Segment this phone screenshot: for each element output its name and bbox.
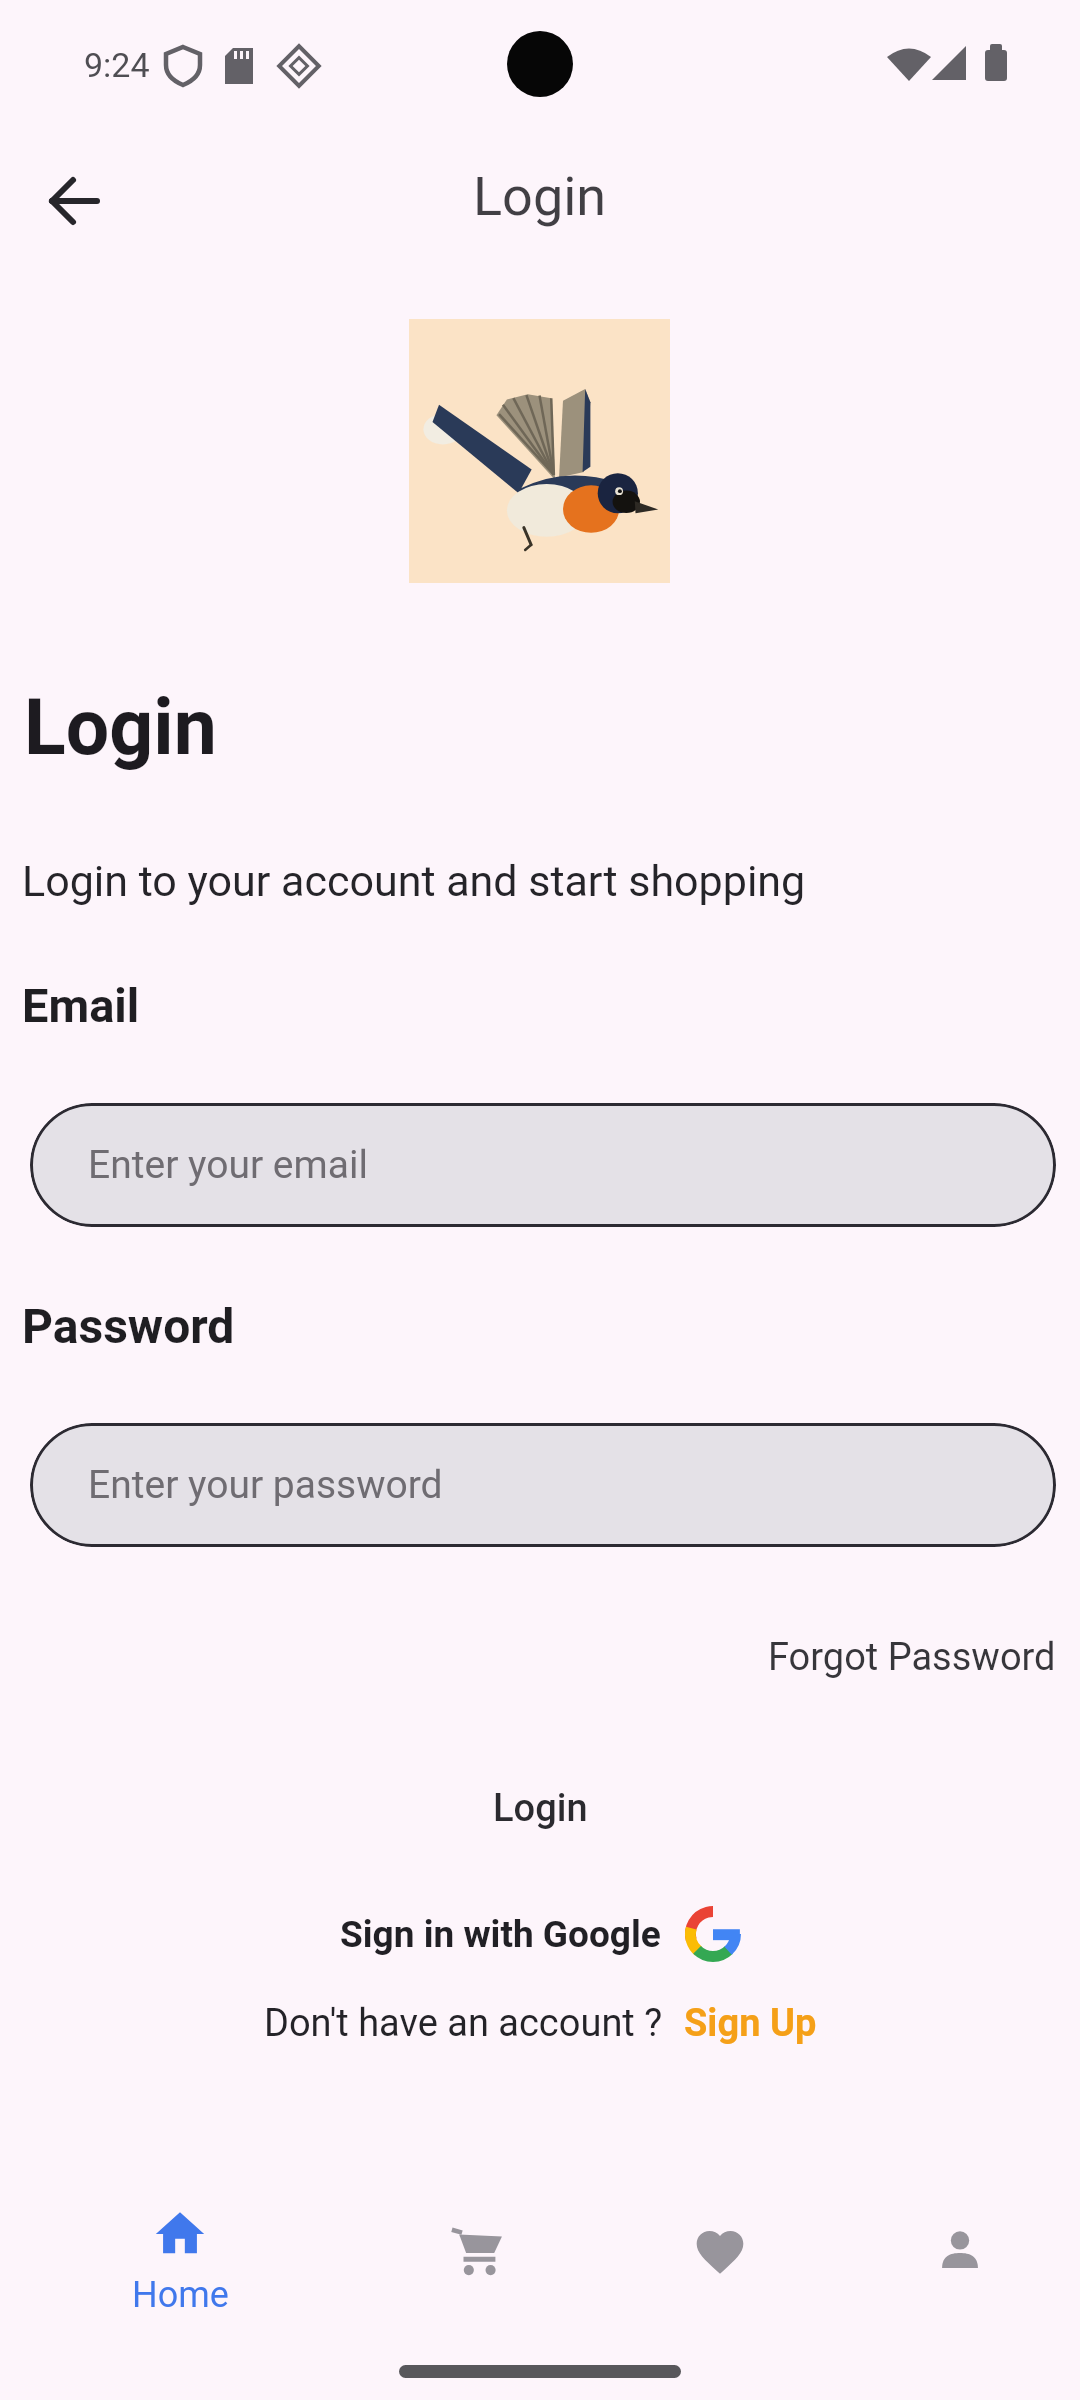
staticText: Enter your email — [88, 1142, 368, 1188]
button[interactable]: Enter your email — [30, 1103, 1056, 1227]
button[interactable] — [28, 155, 120, 247]
button[interactable]: Sign in with Google — [340, 1906, 741, 1962]
staticText: 9:24 — [84, 45, 150, 85]
staticText: Don't have an account ? — [264, 2001, 663, 2046]
staticText: Email — [22, 978, 140, 1033]
button[interactable] — [600, 2190, 840, 2340]
staticText: Login to your account and start shopping — [22, 856, 806, 906]
button[interactable] — [360, 2190, 600, 2340]
button[interactable]: Sign Up — [684, 2001, 817, 2046]
staticText: Login — [493, 1786, 588, 1831]
staticText: Sign in with Google — [340, 1913, 661, 1956]
button[interactable]: Login — [473, 1786, 608, 1831]
staticText: Login — [473, 165, 607, 228]
staticText: Sign Up — [684, 2001, 817, 2046]
staticText: Password — [22, 1298, 235, 1354]
staticText: Login — [24, 683, 217, 773]
staticText: Forgot Password — [768, 1635, 1056, 1680]
staticText: Home — [132, 2274, 229, 2316]
staticText: Enter your password — [88, 1462, 443, 1508]
button[interactable]: Forgot Password — [768, 1635, 1080, 1680]
button[interactable]: Enter your password — [30, 1423, 1056, 1547]
button[interactable] — [840, 2190, 1080, 2340]
button[interactable]: Home — [0, 2190, 360, 2340]
